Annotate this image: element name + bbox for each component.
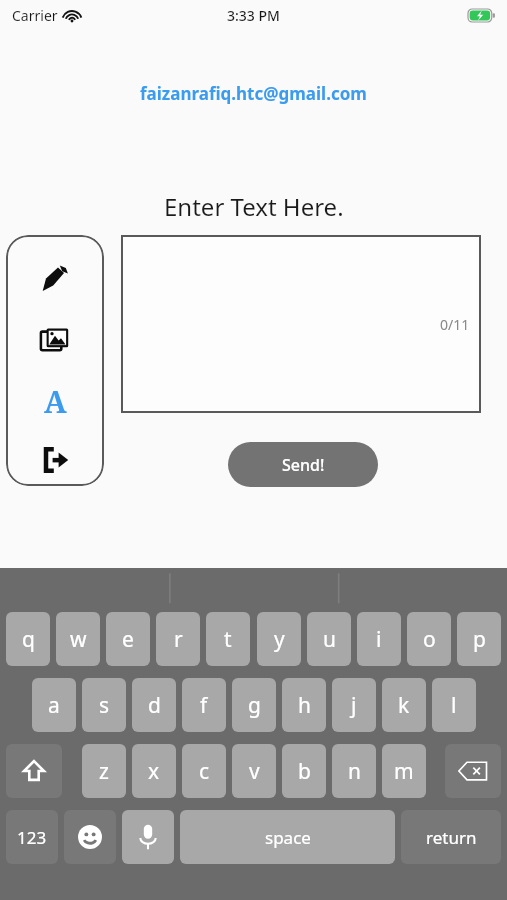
staticText: Enter Text Here. bbox=[164, 190, 344, 223]
button[interactable]: b bbox=[282, 744, 326, 798]
button[interactable]: v bbox=[232, 744, 276, 798]
button[interactable]: A bbox=[33, 379, 77, 423]
staticText: q bbox=[22, 625, 35, 654]
staticText: g bbox=[248, 691, 261, 720]
button[interactable]: a bbox=[32, 678, 76, 732]
button[interactable]: space bbox=[180, 810, 395, 864]
button[interactable]: 123 bbox=[6, 810, 58, 864]
button[interactable]: f bbox=[182, 678, 226, 732]
button[interactable]: x bbox=[132, 744, 176, 798]
button[interactable]: z bbox=[82, 744, 126, 798]
button[interactable]: Draw bbox=[33, 257, 77, 301]
button[interactable]: p bbox=[457, 612, 501, 666]
staticText: a bbox=[48, 691, 60, 720]
staticText: 123 bbox=[17, 826, 47, 849]
button[interactable]: j bbox=[332, 678, 376, 732]
button[interactable]: u bbox=[307, 612, 351, 666]
button[interactable]: Emoji bbox=[64, 810, 116, 864]
button[interactable]: return bbox=[401, 810, 501, 864]
staticText: t bbox=[224, 625, 232, 654]
staticText: j bbox=[351, 691, 357, 720]
staticText: i bbox=[376, 625, 382, 654]
staticText: z bbox=[99, 757, 109, 786]
button[interactable]: m bbox=[382, 744, 426, 798]
staticText: e bbox=[122, 625, 134, 654]
staticText: w bbox=[70, 625, 87, 654]
staticText: d bbox=[148, 691, 161, 720]
staticText: A bbox=[44, 381, 67, 422]
button[interactable]: Exit bbox=[33, 438, 77, 482]
button[interactable]: r bbox=[156, 612, 200, 666]
staticText: r bbox=[174, 625, 183, 654]
staticText: b bbox=[298, 757, 311, 786]
button[interactable]: e bbox=[106, 612, 150, 666]
button[interactable]: d bbox=[132, 678, 176, 732]
button[interactable]: o bbox=[407, 612, 451, 666]
button[interactable]: Photos bbox=[33, 318, 77, 362]
button[interactable]: Dictation bbox=[122, 810, 174, 864]
staticText: n bbox=[348, 757, 361, 786]
button[interactable]: g bbox=[232, 678, 276, 732]
button[interactable]: s bbox=[82, 678, 126, 732]
staticText: v bbox=[249, 757, 260, 786]
staticText: p bbox=[473, 625, 486, 654]
button[interactable]: Delete bbox=[445, 744, 501, 798]
button[interactable]: c bbox=[182, 744, 226, 798]
staticText: f bbox=[200, 691, 208, 720]
staticText: 0/11 bbox=[440, 315, 470, 334]
button[interactable]: l bbox=[432, 678, 476, 732]
staticText: y bbox=[274, 625, 285, 654]
staticText: u bbox=[323, 625, 336, 654]
button[interactable]: Shift bbox=[6, 744, 62, 798]
button[interactable]: faizanrafiq.htc@gmail.com bbox=[140, 82, 367, 105]
staticText: o bbox=[423, 625, 436, 654]
staticText: l bbox=[451, 691, 457, 720]
staticText: 3:33 PM bbox=[227, 6, 280, 25]
button[interactable]: n bbox=[332, 744, 376, 798]
staticText: x bbox=[148, 757, 160, 786]
staticText: h bbox=[298, 691, 311, 720]
button[interactable]: 0/11 bbox=[121, 235, 481, 413]
staticText: c bbox=[199, 757, 210, 786]
button[interactable]: h bbox=[282, 678, 326, 732]
button[interactable]: t bbox=[206, 612, 250, 666]
button[interactable]: q bbox=[6, 612, 50, 666]
staticText: Send! bbox=[282, 454, 325, 476]
button[interactable]: k bbox=[382, 678, 426, 732]
staticText: return bbox=[426, 826, 477, 849]
button[interactable]: i bbox=[357, 612, 401, 666]
staticText: k bbox=[398, 691, 410, 720]
button[interactable]: y bbox=[257, 612, 301, 666]
button[interactable]: w bbox=[56, 612, 100, 666]
staticText: s bbox=[99, 691, 110, 720]
button[interactable]: Send! bbox=[228, 442, 378, 487]
staticText: Carrier bbox=[12, 6, 58, 25]
staticText: m bbox=[394, 757, 414, 786]
staticText: space bbox=[265, 826, 311, 849]
